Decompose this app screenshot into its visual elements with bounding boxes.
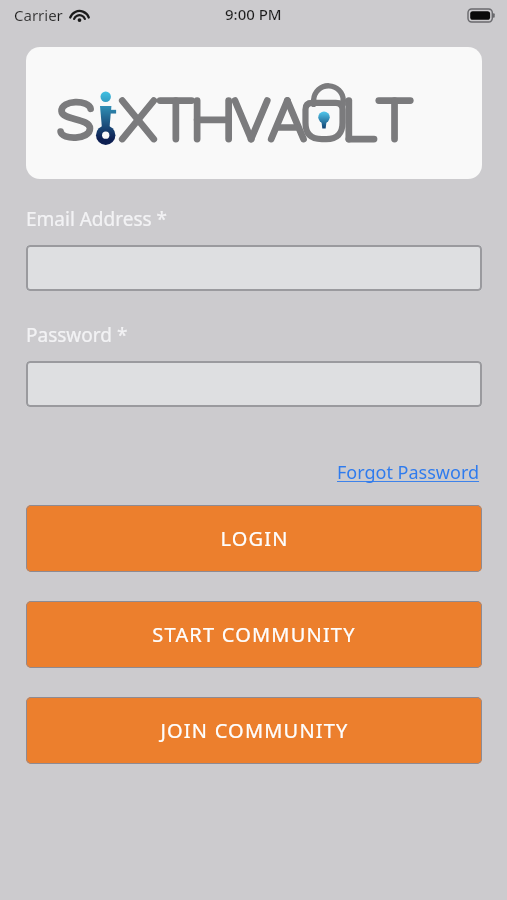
button[interactable]: Forgot Password <box>335 458 482 487</box>
staticText: Password * <box>26 322 128 348</box>
staticText: LOGIN <box>220 525 289 552</box>
staticText: JOIN COMMUNITY <box>160 717 349 744</box>
button[interactable] <box>26 245 482 291</box>
staticText: START COMMUNITY <box>152 621 356 648</box>
staticText: Carrier <box>14 5 63 25</box>
staticText: Forgot Password <box>337 460 480 485</box>
button[interactable] <box>26 361 482 407</box>
button[interactable]: START COMMUNITY <box>26 601 482 668</box>
staticText: Email Address * <box>26 206 168 232</box>
button[interactable]: LOGIN <box>26 505 482 572</box>
button[interactable]: JOIN COMMUNITY <box>26 697 482 764</box>
staticText: 9:00 PM <box>225 4 282 24</box>
